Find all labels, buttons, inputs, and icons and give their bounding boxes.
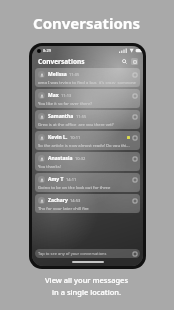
- staticText: 10:11: [70, 135, 81, 140]
- staticText: Greg is at the office, are you there yet…: [38, 122, 114, 126]
- staticText: So the article is now almost ready! Do y…: [38, 143, 130, 147]
- staticText: View all your messages: [45, 275, 129, 285]
- button[interactable]: More options: [132, 177, 137, 182]
- button[interactable]: More options: [132, 93, 137, 98]
- staticText: 14:11: [66, 177, 77, 182]
- button[interactable]: Melissa: [35, 68, 140, 87]
- button[interactable]: Compose: [131, 58, 138, 65]
- staticText: 11:05: [69, 72, 80, 77]
- staticText: 14:53: [70, 198, 81, 203]
- staticText: in a single location.: [52, 287, 122, 297]
- button[interactable]: More options: [132, 114, 137, 119]
- button[interactable]: Search: [121, 58, 128, 65]
- staticText: 10:32: [75, 156, 86, 161]
- staticText: omg I was trying to find a bus, it's cra…: [38, 80, 136, 84]
- button[interactable]: More options: [132, 135, 137, 140]
- staticText: 11:55: [76, 114, 87, 119]
- button[interactable]: Tap to see any of your conversations: [35, 249, 140, 258]
- staticText: Melissa: [48, 71, 67, 78]
- button[interactable]: Samantha: [35, 110, 140, 129]
- button[interactable]: Kevin L.: [35, 131, 140, 150]
- staticText: Conversations: [38, 57, 85, 66]
- staticText: Zachary: [48, 197, 68, 204]
- staticText: Thx for your later chill fire: [38, 206, 89, 210]
- button[interactable]: Zachary: [35, 194, 140, 213]
- staticText: Kevin L.: [48, 134, 68, 141]
- button[interactable]: Max: [35, 89, 140, 108]
- staticText: Anastasia: [48, 155, 73, 162]
- staticText: You like it so far over there?: [38, 101, 93, 105]
- staticText: Max: [48, 92, 59, 99]
- staticText: Tap to see any of your conversations: [38, 251, 133, 256]
- button[interactable]: Anastasia: [35, 152, 140, 171]
- button[interactable]: Amy T: [35, 173, 140, 192]
- button[interactable]: More options: [132, 156, 137, 161]
- staticText: Going to be on the look out for three: [38, 185, 111, 189]
- button[interactable]: More options: [132, 72, 137, 77]
- staticText: 11:13: [61, 93, 72, 98]
- staticText: 8:29: [43, 48, 51, 53]
- staticText: Amy T: [48, 176, 64, 183]
- button[interactable]: More options: [132, 198, 137, 203]
- staticText: Samantha: [48, 113, 74, 120]
- staticText: You thanks!: [38, 164, 61, 168]
- staticText: Conversations: [33, 13, 141, 33]
